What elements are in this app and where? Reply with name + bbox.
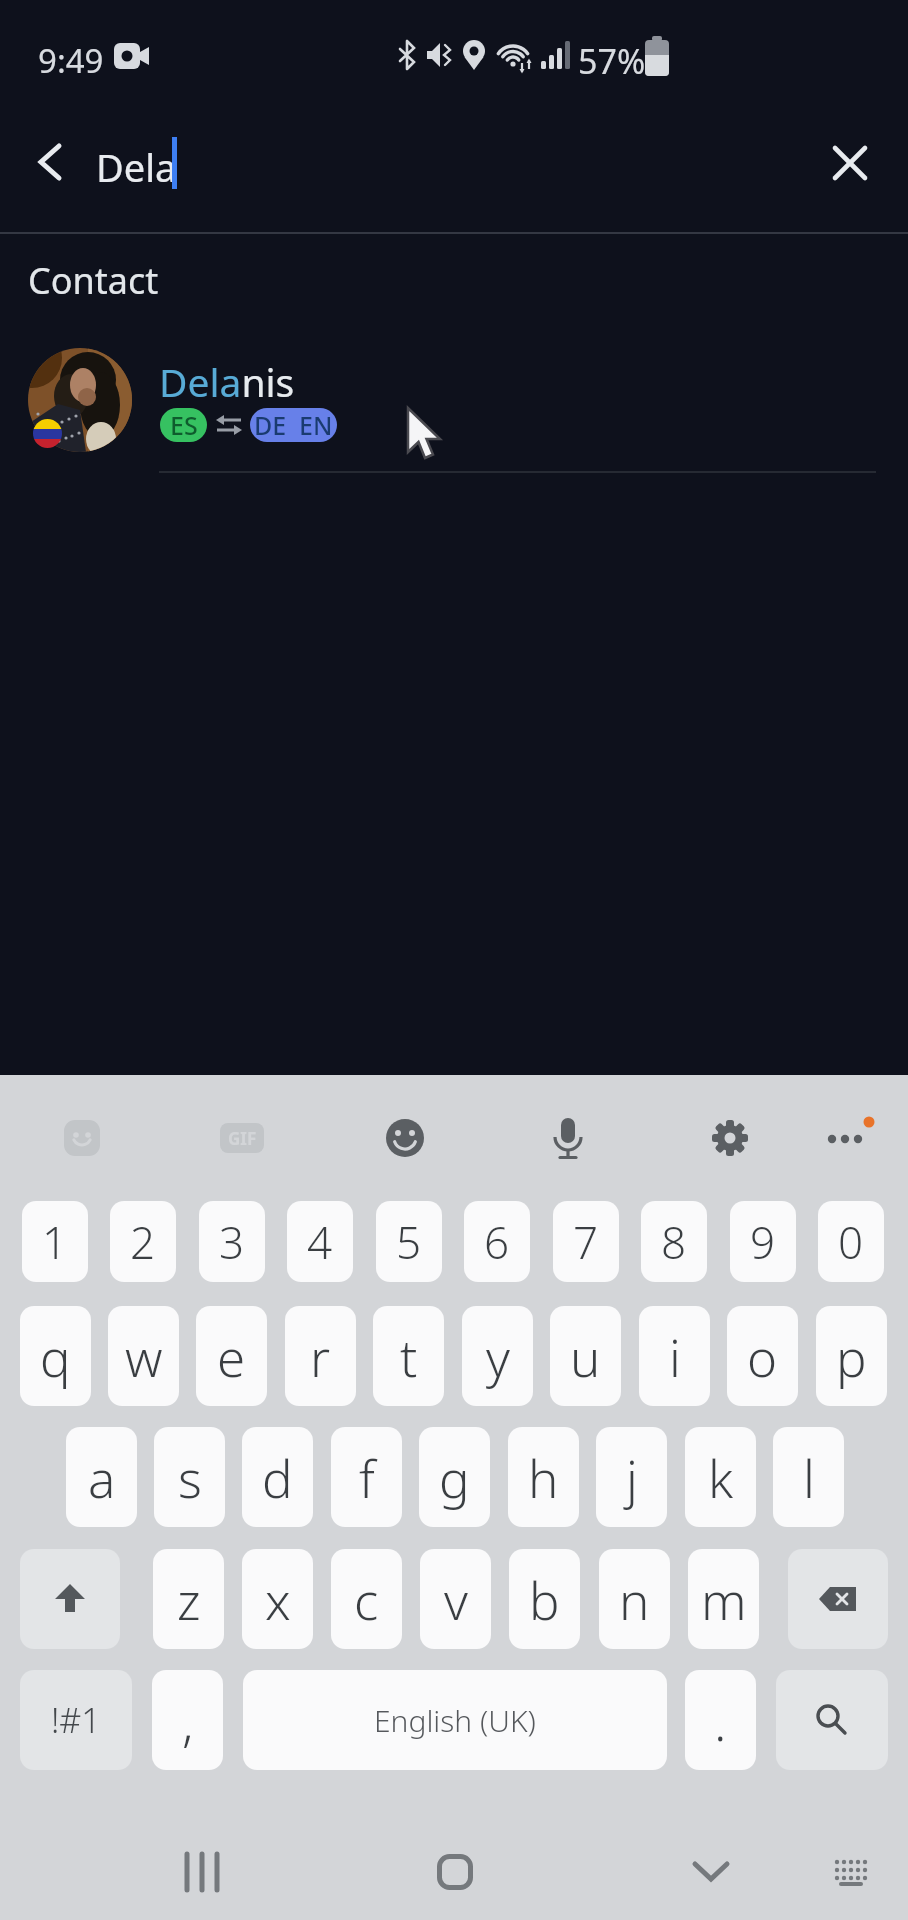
button[interactable]: i <box>639 1306 710 1406</box>
button[interactable]: 9 <box>730 1201 796 1282</box>
button[interactable]: o <box>727 1306 798 1406</box>
staticText: r <box>310 1322 331 1391</box>
button[interactable]: English (UK) <box>243 1670 667 1770</box>
staticText: 9 <box>750 1212 776 1272</box>
staticText: English (UK) <box>374 1700 536 1741</box>
button[interactable]: , <box>152 1670 223 1770</box>
button[interactable]: c <box>331 1549 402 1649</box>
button[interactable]: GIF <box>220 1123 264 1153</box>
staticText: k <box>708 1443 734 1512</box>
button[interactable]: 8 <box>641 1201 707 1282</box>
button[interactable]: 0 <box>818 1201 884 1282</box>
staticText: 1 <box>42 1212 68 1272</box>
staticText: 4 <box>307 1212 333 1272</box>
staticText: !#1 <box>51 1697 101 1743</box>
button[interactable]: 6 <box>464 1201 530 1282</box>
staticText: . <box>714 1686 727 1755</box>
button[interactable]: 4 <box>287 1201 353 1282</box>
staticText: 9:49 <box>38 38 104 83</box>
staticText: s <box>178 1443 202 1512</box>
staticText: v <box>444 1565 468 1634</box>
staticText: 5 <box>396 1212 422 1272</box>
staticText: n <box>619 1565 650 1634</box>
staticText: m <box>701 1565 747 1634</box>
button[interactable]: 3 <box>199 1201 265 1282</box>
staticText: e <box>217 1322 246 1391</box>
button[interactable]: Delanis <box>0 330 908 472</box>
button[interactable] <box>385 1118 425 1158</box>
staticText: Dela <box>96 141 177 193</box>
button[interactable]: q <box>20 1306 91 1406</box>
staticText: , <box>182 1686 194 1755</box>
button[interactable] <box>681 1842 741 1902</box>
staticText: g <box>439 1443 470 1512</box>
button[interactable]: x <box>242 1549 313 1649</box>
button[interactable]: d <box>242 1427 313 1527</box>
button[interactable]: l <box>773 1427 844 1527</box>
staticText: 6 <box>484 1212 510 1272</box>
staticText: GIF <box>228 1127 257 1150</box>
staticText: EN <box>299 408 333 442</box>
button[interactable]: k <box>685 1427 756 1527</box>
button[interactable]: g <box>419 1427 490 1527</box>
button[interactable]: n <box>599 1549 670 1649</box>
button[interactable]: v <box>420 1549 491 1649</box>
button[interactable]: r <box>285 1306 356 1406</box>
staticText: 0 <box>838 1212 864 1272</box>
button[interactable]: h <box>508 1427 579 1527</box>
button[interactable] <box>820 133 880 193</box>
staticText: f <box>359 1443 375 1512</box>
button[interactable]: s <box>154 1427 225 1527</box>
button[interactable]: y <box>462 1306 533 1406</box>
staticText: 7 <box>573 1212 599 1272</box>
staticText: i <box>669 1322 681 1391</box>
staticText: x <box>265 1565 291 1634</box>
staticText: j <box>626 1443 638 1512</box>
staticText: y <box>486 1322 510 1391</box>
staticText: z <box>177 1565 201 1634</box>
button[interactable]: m <box>688 1549 759 1649</box>
staticText: b <box>529 1565 560 1634</box>
button[interactable]: e <box>196 1306 267 1406</box>
button[interactable] <box>20 132 80 192</box>
button[interactable] <box>425 1842 485 1902</box>
button[interactable] <box>548 1116 588 1162</box>
button[interactable]: 7 <box>553 1201 619 1282</box>
button[interactable]: b <box>509 1549 580 1649</box>
button[interactable] <box>788 1549 888 1649</box>
button[interactable] <box>710 1118 750 1158</box>
button[interactable] <box>776 1670 888 1770</box>
button[interactable]: j <box>596 1427 667 1527</box>
staticText: Delanis <box>159 355 295 408</box>
button[interactable]: p <box>816 1306 887 1406</box>
staticText: c <box>354 1565 379 1634</box>
button[interactable] <box>822 1115 874 1155</box>
button[interactable]: f <box>331 1427 402 1527</box>
button[interactable] <box>62 1118 102 1158</box>
button[interactable]: w <box>108 1306 179 1406</box>
button[interactable]: !#1 <box>20 1670 132 1770</box>
staticText: h <box>528 1443 559 1512</box>
staticText: a <box>88 1443 116 1512</box>
staticText: 2 <box>130 1212 156 1272</box>
button[interactable] <box>821 1842 881 1902</box>
button[interactable]: t <box>373 1306 444 1406</box>
button[interactable]: u <box>550 1306 621 1406</box>
staticText: Contact <box>28 256 159 305</box>
staticText: d <box>262 1443 293 1512</box>
staticText: 57% <box>578 38 646 84</box>
staticText: DE <box>254 408 287 442</box>
staticText: p <box>836 1322 867 1391</box>
button[interactable] <box>172 1842 232 1902</box>
staticText: t <box>400 1322 418 1391</box>
staticText: u <box>570 1322 601 1391</box>
button[interactable]: a <box>66 1427 137 1527</box>
staticText: l <box>803 1443 815 1512</box>
button[interactable]: 5 <box>376 1201 442 1282</box>
button[interactable]: z <box>153 1549 224 1649</box>
button[interactable] <box>20 1549 120 1649</box>
button[interactable]: 2 <box>110 1201 176 1282</box>
button[interactable]: . <box>685 1670 756 1770</box>
button[interactable]: 1 <box>22 1201 88 1282</box>
staticText: o <box>747 1322 778 1391</box>
